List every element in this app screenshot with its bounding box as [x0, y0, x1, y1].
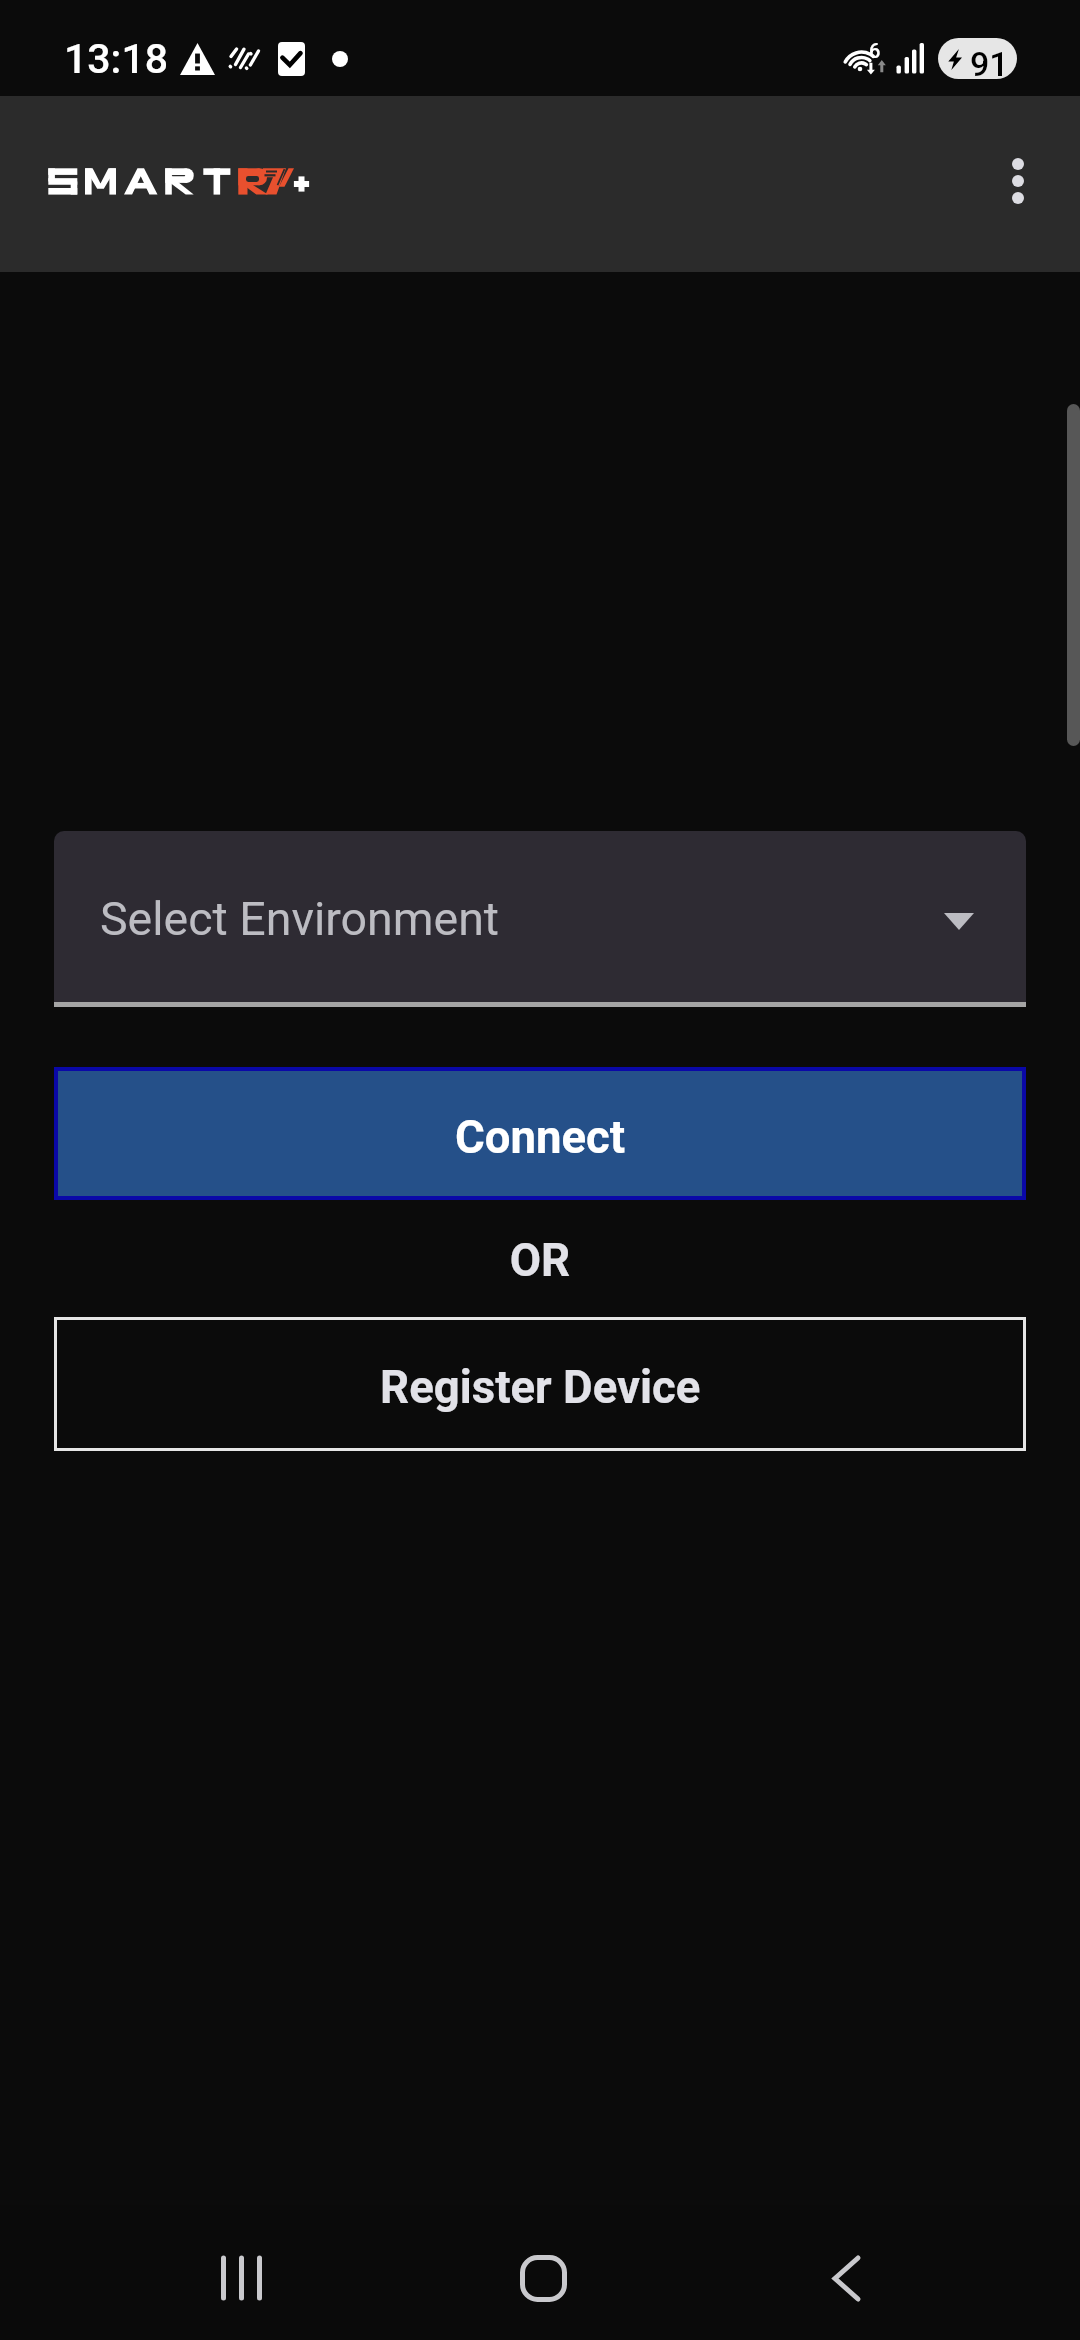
button[interactable]: Back	[786, 2219, 906, 2337]
button[interactable]: Select Environment	[54, 831, 1026, 1007]
staticText: Connect	[455, 1111, 626, 1164]
button[interactable]: Register Device	[54, 1317, 1026, 1451]
staticText: 91	[970, 44, 1009, 79]
button[interactable]: Connect	[58, 1071, 1022, 1196]
staticText: 6	[869, 39, 881, 62]
staticText: OR	[0, 1234, 1080, 1287]
button[interactable]: More options	[966, 129, 1070, 233]
staticText: Register Device	[380, 1361, 701, 1414]
button[interactable]: Recent apps	[181, 2219, 301, 2337]
button[interactable]: Home	[483, 2219, 603, 2337]
staticText: Select Environment	[100, 892, 500, 946]
staticText: 13:18	[64, 35, 169, 83]
